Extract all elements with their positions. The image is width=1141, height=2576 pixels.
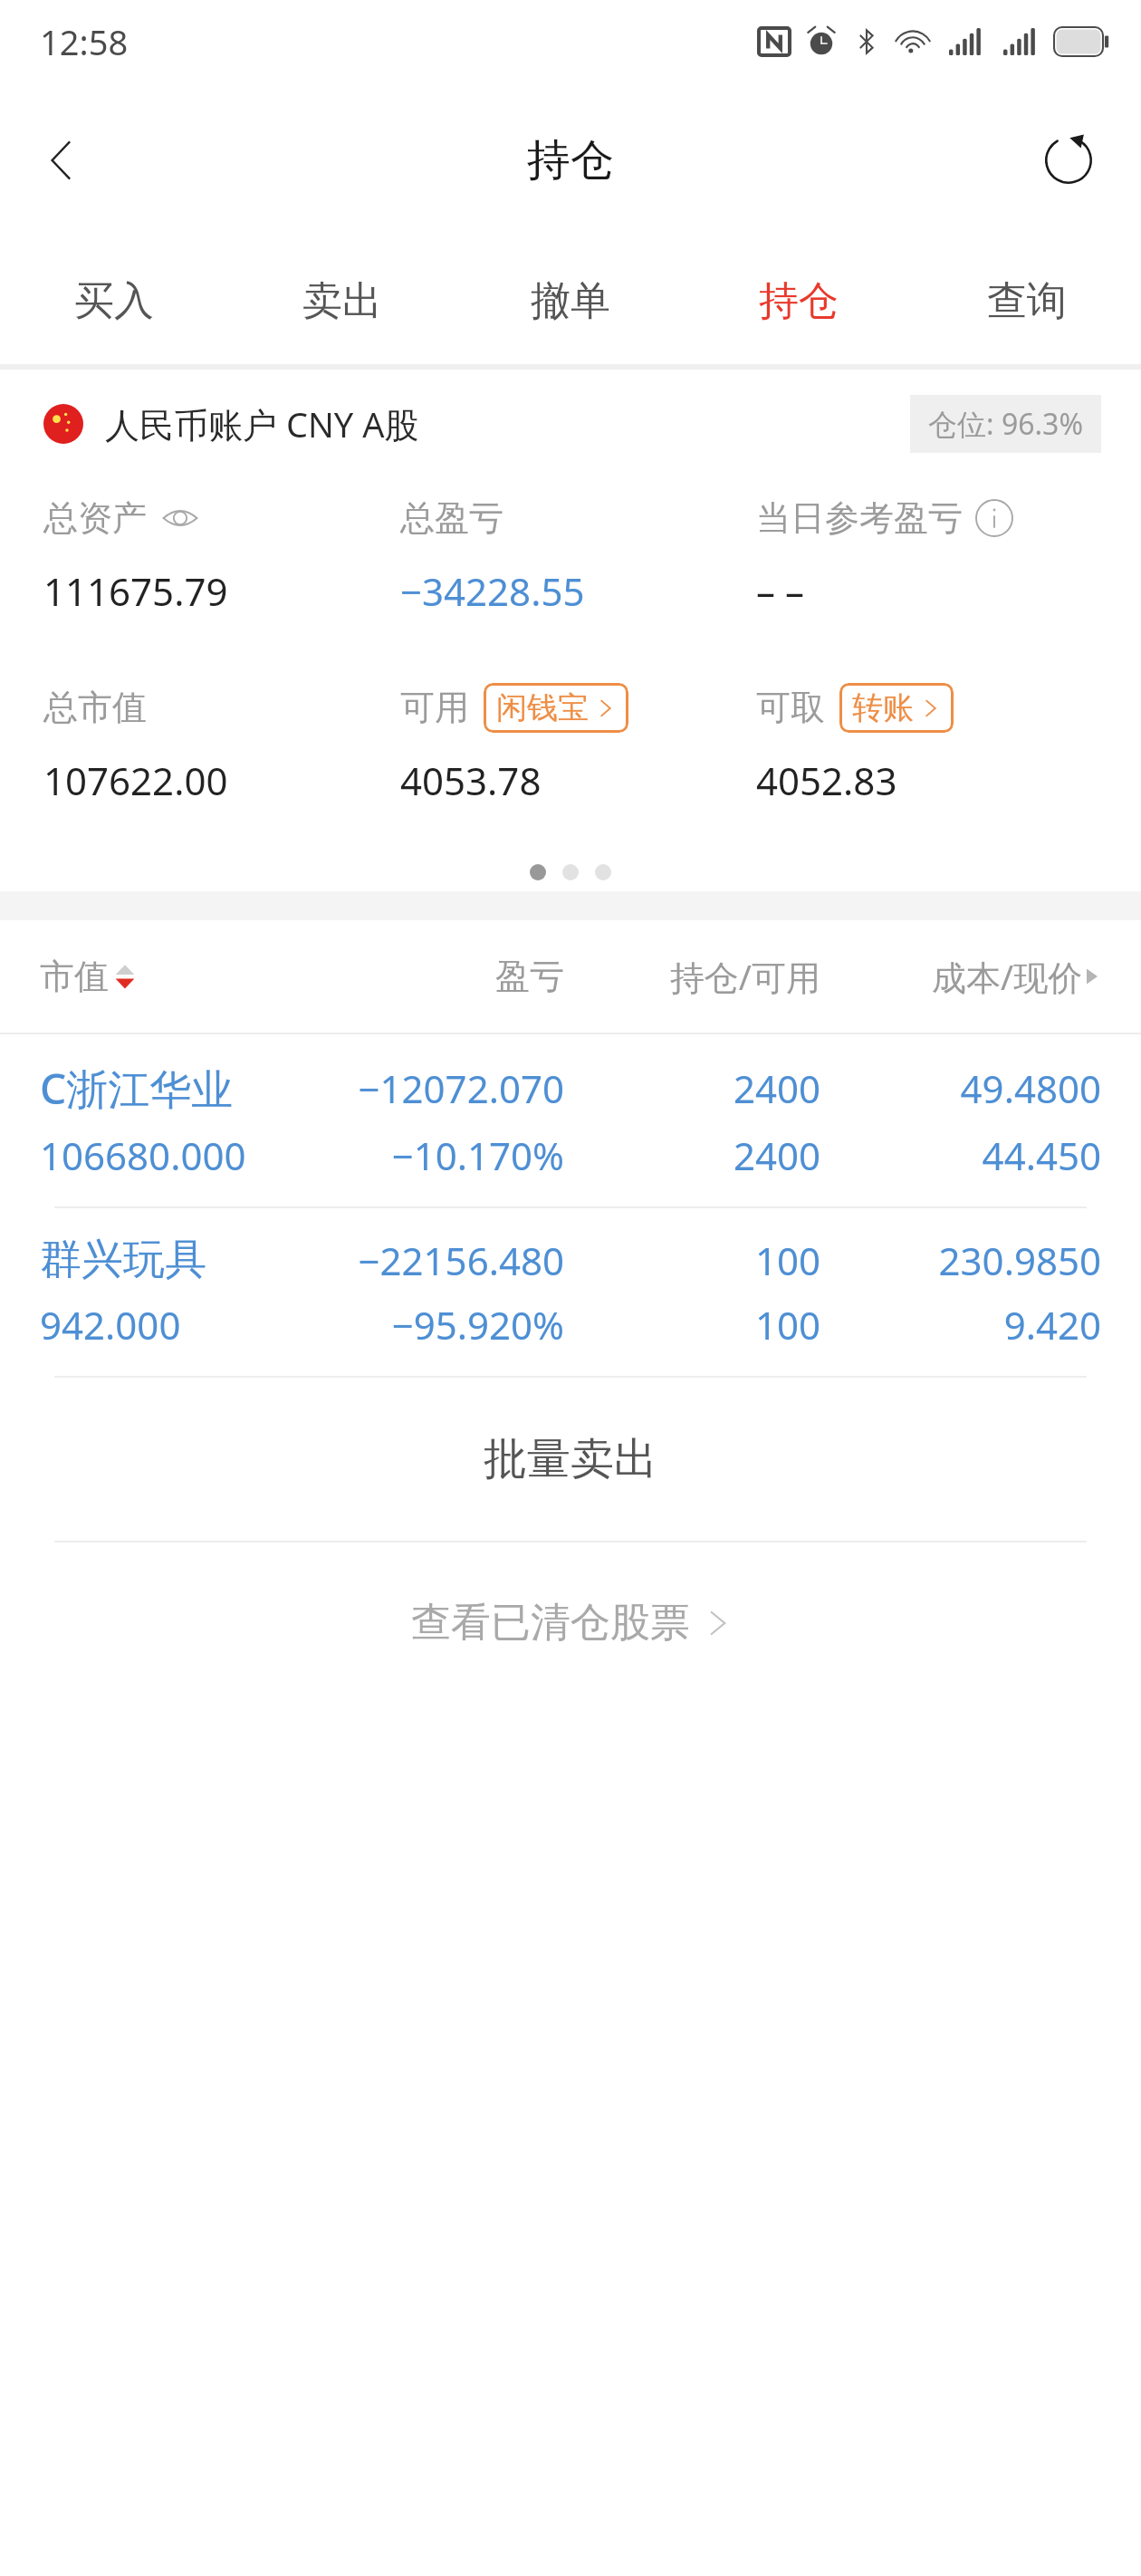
button[interactable]: 群兴玩具	[0, 1208, 1141, 1376]
button[interactable]: Refresh	[1018, 110, 1119, 211]
staticText: 106680.000	[40, 1129, 321, 1181]
staticText: 闲钱宝	[496, 688, 589, 727]
staticText: −95.920%	[321, 1299, 564, 1350]
staticText: 买入	[74, 276, 154, 326]
staticText: 可用	[400, 686, 469, 729]
staticText: 9.420	[820, 1299, 1101, 1350]
staticText: 持仓/可用	[564, 953, 820, 1000]
staticText: 查询	[987, 276, 1067, 326]
button[interactable]: Info	[975, 499, 1013, 537]
staticText: 卖出	[302, 276, 382, 326]
staticText: −10.170%	[321, 1129, 564, 1181]
button[interactable]: 市值	[0, 920, 1141, 1033]
staticText: 总资产	[43, 496, 147, 540]
staticText: 盈亏	[321, 955, 564, 998]
staticText: 2400	[564, 1062, 820, 1114]
staticText: −34228.55	[400, 565, 585, 617]
staticText: 100	[564, 1299, 820, 1350]
staticText: 总盈亏	[400, 496, 503, 540]
button[interactable]: 转账	[839, 683, 954, 733]
staticText: 12:58	[40, 18, 129, 65]
staticText: −12072.070	[321, 1062, 564, 1114]
staticText: 4053.78	[400, 755, 542, 806]
staticText: 942.000	[40, 1299, 321, 1350]
button[interactable]: Toggle visibility	[161, 499, 199, 537]
staticText: 111675.79	[43, 565, 228, 617]
staticText: 撤单	[531, 276, 610, 326]
button[interactable]: C浙江华业	[0, 1034, 1141, 1206]
staticText: 成本/现价	[932, 953, 1083, 1000]
staticText: 44.450	[820, 1129, 1101, 1181]
button[interactable]: 撤单	[456, 237, 685, 364]
staticText: 230.9850	[820, 1235, 1101, 1286]
staticText: 仓位: 96.3%	[928, 404, 1083, 444]
button[interactable]: 查询	[913, 237, 1141, 364]
button[interactable]: 买入	[0, 237, 228, 364]
staticText: 转账	[852, 688, 914, 727]
staticText: −22156.480	[321, 1235, 564, 1286]
staticText: 批量卖出	[484, 1432, 657, 1486]
staticText: 总市值	[43, 686, 147, 729]
button[interactable]: 闲钱宝	[484, 683, 628, 733]
button[interactable]: 持仓	[685, 237, 913, 364]
staticText: 可取	[756, 686, 825, 729]
staticText: 市值	[40, 955, 109, 998]
button[interactable]: 批量卖出	[0, 1378, 1141, 1541]
staticText: 持仓	[759, 276, 839, 326]
button[interactable]: 查看已清仓股票	[0, 1543, 1141, 1702]
staticText: 107622.00	[43, 755, 228, 806]
button[interactable]: 卖出	[228, 237, 456, 364]
staticText: 群兴玩具	[40, 1234, 321, 1286]
button[interactable]: Back	[11, 110, 112, 211]
staticText: 100	[564, 1235, 820, 1286]
staticText: C浙江华业	[40, 1060, 321, 1117]
staticText: 49.4800	[820, 1062, 1101, 1114]
staticText: – –	[756, 565, 804, 617]
staticText: 当日参考盈亏	[756, 496, 963, 540]
staticText: 人民币账户 CNY A股	[105, 400, 419, 447]
staticText: 持仓	[527, 133, 614, 187]
staticText: 4052.83	[756, 755, 897, 806]
staticText: 2400	[564, 1129, 820, 1181]
staticText: 查看已清仓股票	[411, 1598, 690, 1648]
